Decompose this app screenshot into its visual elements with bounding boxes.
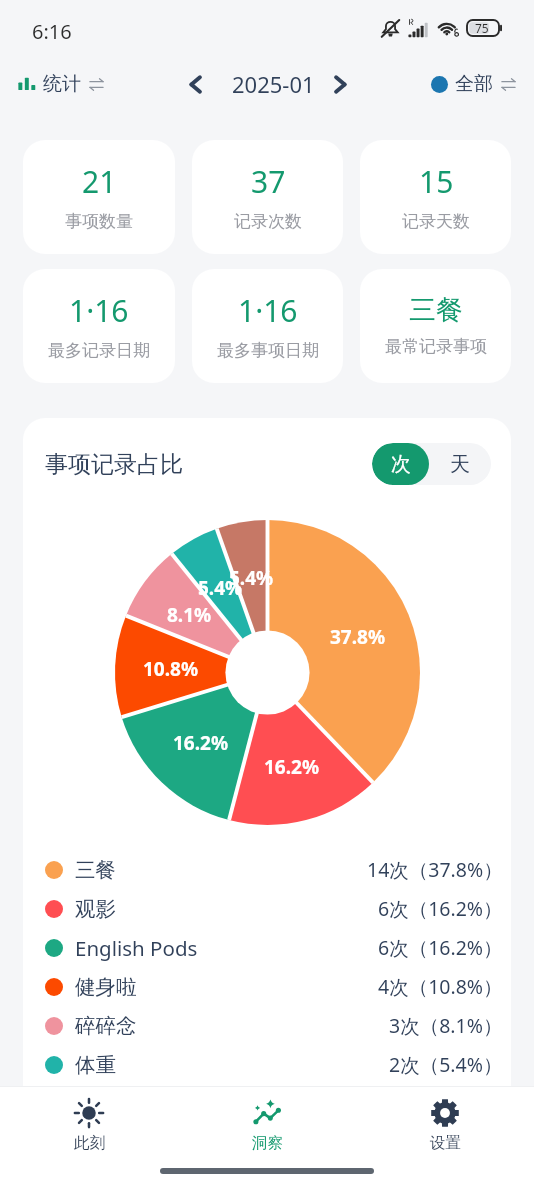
staticText: 6:16: [32, 18, 72, 45]
button[interactable]: 15: [360, 140, 511, 254]
staticText: 统计: [43, 72, 81, 96]
staticText: 2025-01: [232, 69, 315, 99]
staticText: 21: [82, 161, 117, 202]
staticText: 三餐: [409, 293, 463, 327]
button[interactable]: 37: [192, 140, 343, 254]
staticText: 此刻: [74, 1133, 105, 1153]
button[interactable]: 洞察: [178, 1087, 356, 1156]
button[interactable]: 全部: [427, 67, 520, 101]
staticText: 6次（16.2%）: [378, 895, 503, 922]
staticText: 洞察: [252, 1133, 283, 1153]
staticText: 37: [251, 161, 286, 202]
button[interactable]: 1·16: [192, 269, 343, 383]
button[interactable]: 观影: [23, 889, 511, 928]
staticText: 8.1%: [167, 602, 212, 628]
button[interactable]: 1·16: [23, 269, 175, 383]
button[interactable]: 碎碎念: [23, 1006, 511, 1045]
staticText: 最多事项日期: [217, 340, 319, 361]
button[interactable]: 次: [372, 443, 429, 485]
staticText: 次: [391, 452, 411, 477]
staticText: 6次（16.2%）: [378, 934, 503, 961]
button[interactable]: English Pods: [23, 928, 511, 967]
button[interactable]: Next month: [318, 62, 362, 106]
staticText: 三餐: [75, 857, 116, 883]
button[interactable]: 统计: [14, 67, 108, 101]
staticText: 15: [419, 161, 454, 202]
staticText: 1·16: [69, 290, 129, 331]
staticText: 5.4%: [229, 565, 274, 591]
staticText: 3次（8.1%）: [389, 1012, 503, 1039]
button[interactable]: 21: [23, 140, 175, 254]
staticText: 14次（37.8%）: [367, 856, 503, 883]
staticText: 碎碎念: [75, 1013, 137, 1039]
button[interactable]: 三餐: [360, 269, 511, 383]
button[interactable]: 此刻: [0, 1087, 178, 1156]
staticText: 全部: [455, 72, 493, 96]
staticText: 37.8%: [330, 624, 386, 650]
button[interactable]: Previous month: [173, 62, 217, 106]
staticText: 体重: [75, 1052, 116, 1078]
button[interactable]: 天: [429, 443, 491, 485]
staticText: 观影: [75, 896, 116, 922]
staticText: 75: [475, 20, 489, 36]
staticText: 2次（5.4%）: [389, 1051, 503, 1078]
staticText: 16.2%: [173, 730, 229, 756]
staticText: 健身啦: [75, 974, 137, 1000]
staticText: 事项数量: [65, 211, 133, 232]
staticText: 1·16: [238, 290, 298, 331]
button[interactable]: 设置: [356, 1087, 534, 1156]
staticText: 事项记录占比: [45, 450, 183, 479]
staticText: 10.8%: [143, 656, 199, 682]
staticText: 记录天数: [402, 211, 470, 232]
staticText: 最多记录日期: [48, 340, 150, 361]
staticText: 5.4%: [198, 575, 243, 601]
button[interactable]: 健身啦: [23, 967, 511, 1006]
staticText: 4次（10.8%）: [378, 973, 503, 1000]
staticText: English Pods: [75, 934, 198, 962]
staticText: 天: [450, 452, 470, 477]
staticText: 最常记录事项: [385, 336, 487, 357]
staticText: 16.2%: [264, 754, 320, 780]
staticText: 设置: [430, 1133, 461, 1153]
staticText: 记录次数: [234, 211, 302, 232]
button[interactable]: 三餐: [23, 850, 511, 889]
button[interactable]: 体重: [23, 1045, 511, 1084]
